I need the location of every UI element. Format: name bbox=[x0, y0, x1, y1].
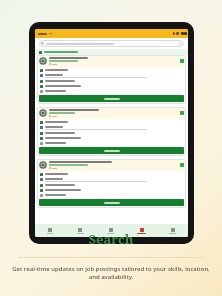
button[interactable]: Save job bbox=[180, 111, 184, 115]
button[interactable]: Jobs bbox=[65, 224, 95, 237]
button[interactable]: Profile bbox=[157, 224, 188, 237]
other: Expand bbox=[49, 32, 52, 35]
button[interactable]: Apply now bbox=[39, 199, 184, 206]
staticText: Get real-time updates on job postings ta… bbox=[6, 265, 216, 281]
button[interactable]: Save job bbox=[37, 107, 186, 156]
staticText: Search bbox=[0, 230, 222, 248]
button[interactable]: Save job bbox=[180, 59, 184, 63]
button[interactable]: Save job bbox=[37, 55, 186, 104]
button[interactable]: Search jobs field bbox=[39, 40, 184, 47]
button[interactable]: Search bbox=[126, 224, 157, 237]
button[interactable]: Apply now bbox=[39, 95, 184, 102]
button[interactable]: Save job bbox=[37, 159, 186, 208]
button[interactable]: Applications bbox=[95, 224, 126, 237]
button[interactable]: Save job bbox=[180, 163, 184, 167]
button[interactable]: Apply now bbox=[39, 147, 184, 154]
button[interactable]: Home bbox=[35, 224, 65, 237]
